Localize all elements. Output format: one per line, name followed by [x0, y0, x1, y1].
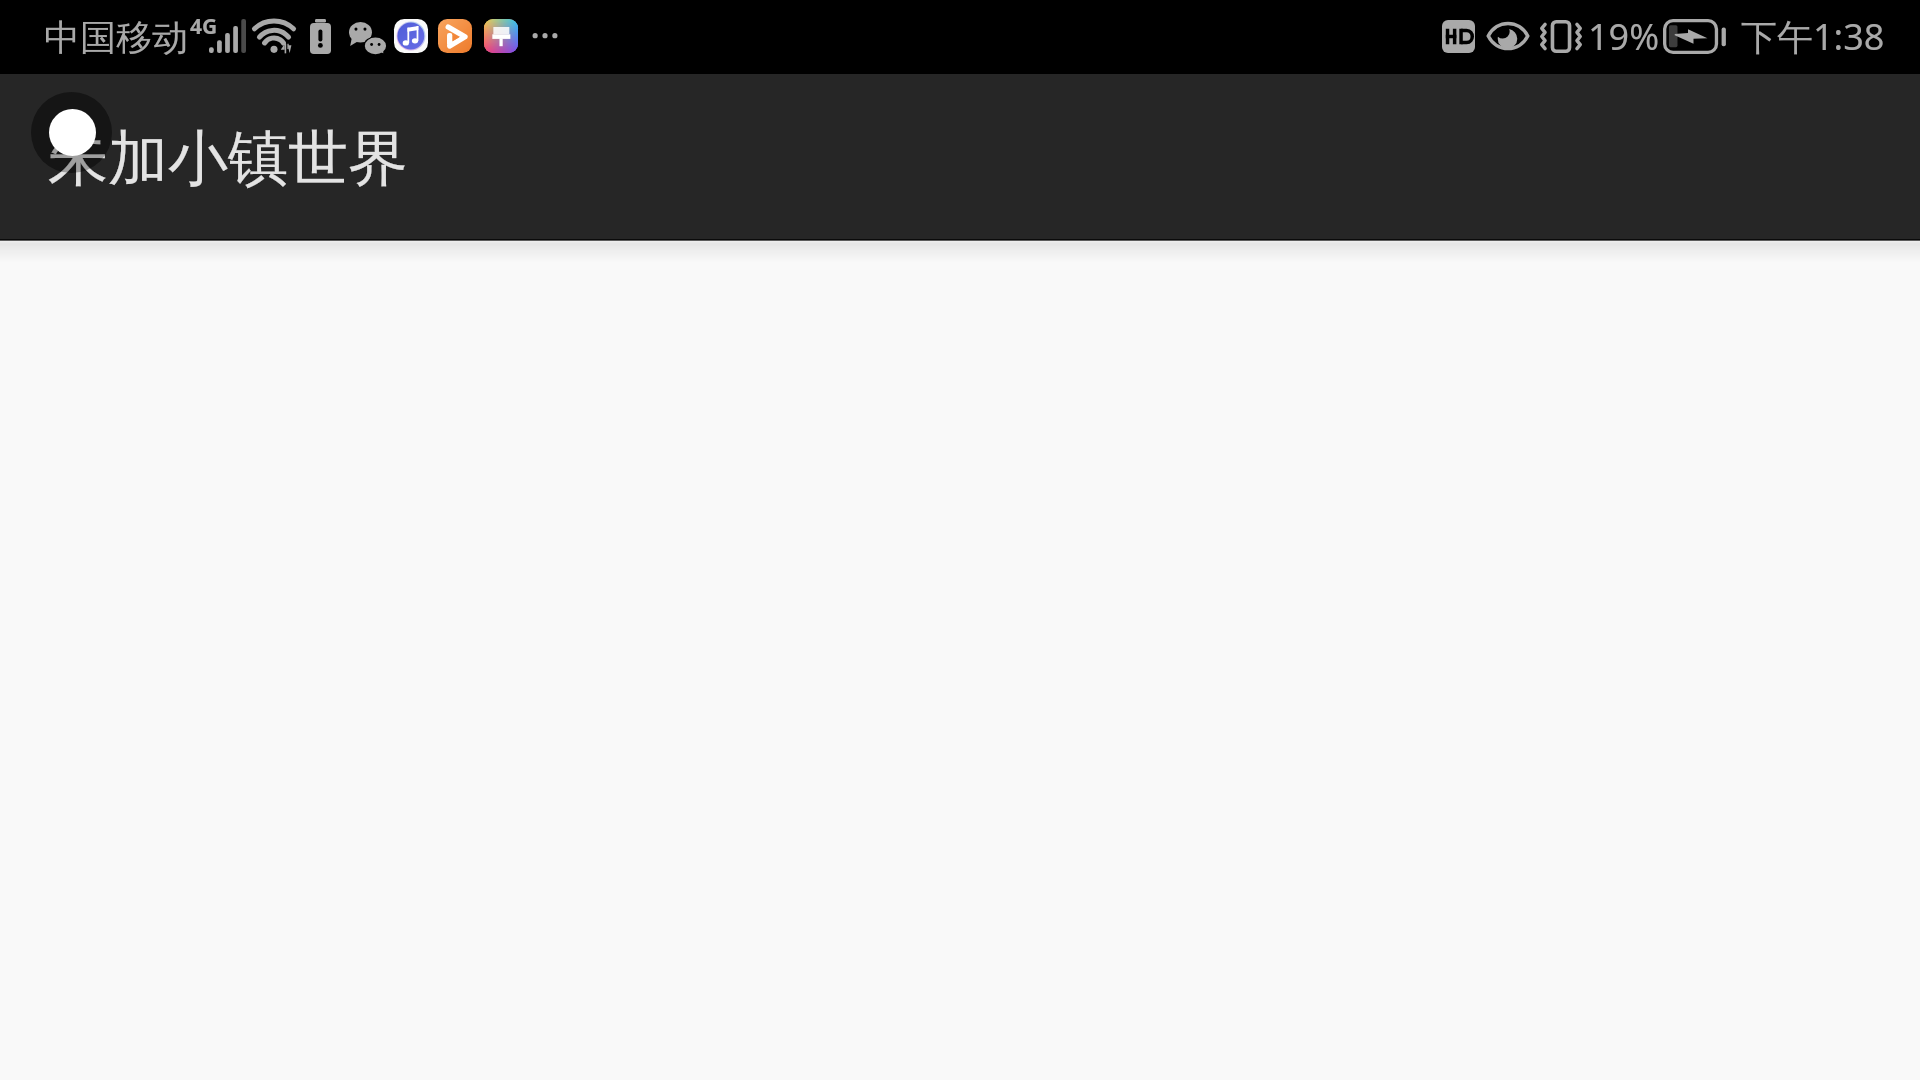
staticText: 朱加小镇世界: [48, 121, 408, 197]
staticText: 中国移动: [44, 15, 188, 60]
button[interactable]: [16, 84, 422, 180]
button[interactable]: Account avatar: [31, 92, 112, 173]
staticText: 19%: [1588, 12, 1660, 61]
staticText: 下午1:38: [1741, 12, 1885, 61]
staticText: 4G: [190, 12, 218, 41]
